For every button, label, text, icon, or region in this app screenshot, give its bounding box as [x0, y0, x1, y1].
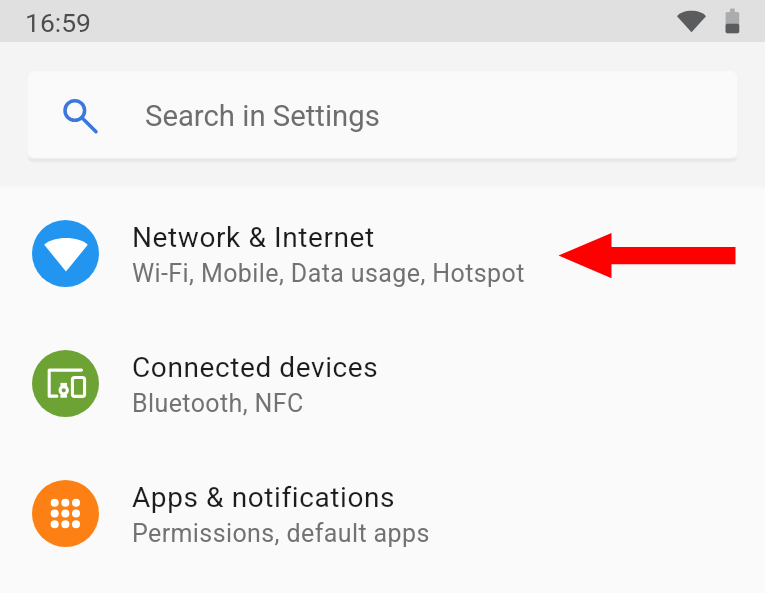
button[interactable]: Connected devices — [0, 318, 765, 448]
staticText: Permissions, default apps — [132, 519, 430, 548]
staticText: Connected devices — [132, 351, 379, 384]
staticText: Wi-Fi, Mobile, Data usage, Hotspot — [132, 259, 525, 288]
button[interactable]: Apps and notifications — [0, 448, 765, 578]
staticText: 16:59 — [25, 7, 91, 38]
other: Search — [60, 96, 100, 136]
other: Wi-Fi and battery status — [676, 8, 740, 34]
button[interactable]: Search — [28, 71, 737, 158]
staticText: Bluetooth, NFC — [132, 389, 304, 418]
other: Network and Internet — [32, 220, 99, 287]
staticText: Apps & notifications — [132, 481, 396, 514]
other: Apps and notifications — [32, 480, 99, 547]
other: Connected devices — [32, 350, 99, 417]
staticText: Search in Settings — [145, 99, 380, 133]
button[interactable]: Network and Internet — [0, 188, 765, 318]
staticText: Network & Internet — [132, 221, 375, 254]
